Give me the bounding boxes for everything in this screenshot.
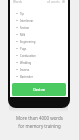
- staticText: Tip: [20, 12, 24, 16]
- staticText: More than 4000 words for memory training: [16, 115, 63, 130]
- button[interactable]: Coeducation: [10, 52, 68, 59]
- staticText: Milk: [20, 33, 26, 37]
- button[interactable]: Tip: [10, 10, 68, 17]
- staticText: Coeducation: [20, 54, 36, 58]
- staticText: Section: [20, 26, 30, 30]
- staticText: Inverse: [20, 68, 30, 72]
- button[interactable]: Bartender: [10, 73, 68, 80]
- button[interactable]: Profile: [62, 0, 65, 3]
- staticText: Pugs: [20, 47, 27, 51]
- button[interactable]: Wedding: [10, 59, 68, 66]
- button[interactable]: Inverse: [10, 66, 68, 73]
- staticText: Check me: [33, 88, 46, 92]
- button[interactable]: Milk: [10, 31, 68, 38]
- button[interactable]: Interlinear: [10, 17, 68, 24]
- button[interactable]: Pugs: [10, 45, 68, 52]
- staticText: Wedding: [20, 61, 32, 65]
- button[interactable]: Section: [10, 24, 68, 31]
- staticText: Interlinear: [20, 19, 34, 23]
- button[interactable]: Check me: [12, 83, 66, 96]
- button[interactable]: Engineering: [10, 38, 68, 45]
- staticText: all words: [47, 0, 60, 4]
- staticText: Engineering: [20, 40, 36, 44]
- staticText: Bartender: [20, 75, 33, 79]
- staticText: Words: [13, 0, 23, 4]
